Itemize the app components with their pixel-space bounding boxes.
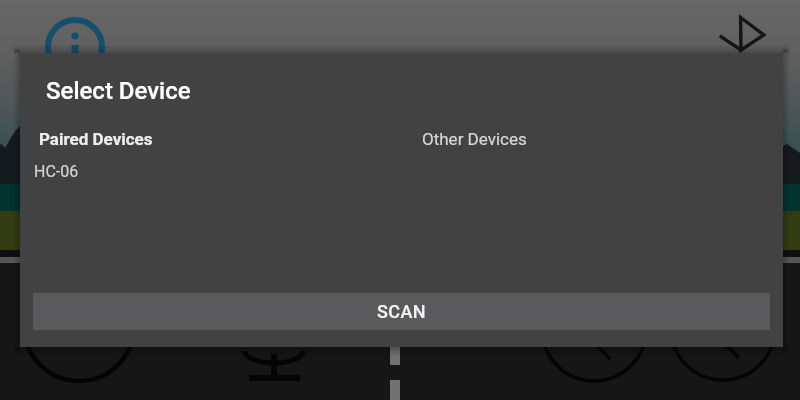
staticText: Other Devices: [422, 129, 527, 149]
button[interactable]: HC-06: [30, 158, 411, 184]
button[interactable]: Steering: [712, 8, 776, 72]
button[interactable]: SCAN: [33, 293, 770, 330]
button[interactable]: Paired Devices: [30, 127, 411, 151]
button[interactable]: Other Devices: [413, 127, 773, 151]
staticText: SCAN: [377, 301, 426, 322]
staticText: Paired Devices: [39, 129, 153, 149]
staticText: HC-06: [34, 162, 79, 181]
button[interactable]: Info: [45, 17, 105, 77]
staticText: Select Device: [46, 77, 191, 105]
